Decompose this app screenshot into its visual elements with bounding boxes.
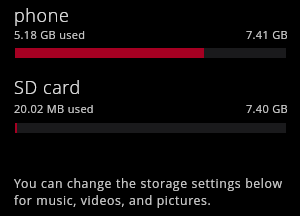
button[interactable]: phone [0,3,300,58]
staticText: 5.18 GB used [14,27,86,42]
staticText: SD card [14,75,81,100]
staticText: 7.40 GB [0,101,288,116]
staticText: 7.41 GB [0,27,288,42]
staticText: 20.02 MB used [14,101,94,116]
staticText: You can change the storage settings belo… [14,175,287,209]
button[interactable]: SD card [0,75,300,133]
staticText: phone [14,3,70,28]
